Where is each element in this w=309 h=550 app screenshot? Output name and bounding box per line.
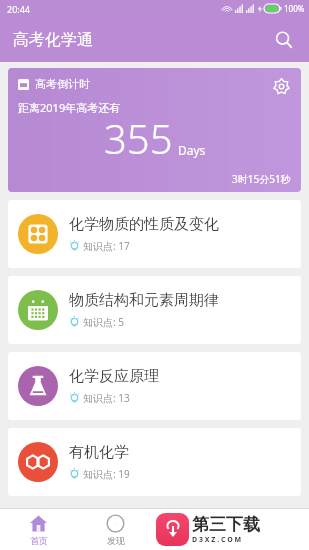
staticText: Days bbox=[178, 142, 206, 158]
staticText: 物质结构和元素周期律 bbox=[69, 291, 219, 310]
staticText: 化学物质的性质及变化 bbox=[69, 215, 219, 234]
button[interactable]: 首页 bbox=[0, 509, 77, 550]
staticText: 高考倒计时 bbox=[35, 77, 90, 91]
button[interactable]: 高考倒计时 bbox=[8, 68, 301, 192]
staticText: 知识点: 13 bbox=[83, 391, 130, 405]
staticText: 知识点: 19 bbox=[83, 467, 130, 481]
staticText: 第三下载 bbox=[192, 514, 260, 535]
button[interactable]: 发现 bbox=[77, 509, 154, 550]
staticText: 100% bbox=[284, 3, 305, 14]
staticText: 3时15分51秒 bbox=[232, 172, 291, 186]
button[interactable]: 化学物质的性质及变化 bbox=[8, 200, 301, 268]
staticText: 距离2019年高考还有 bbox=[18, 100, 121, 115]
staticText: 化学反应原理 bbox=[69, 367, 159, 386]
button[interactable]: 有机化学 bbox=[8, 428, 301, 496]
staticText: 355 bbox=[104, 111, 173, 165]
staticText: 高考化学通 bbox=[13, 30, 93, 50]
staticText: 知识点: 17 bbox=[83, 239, 130, 253]
staticText: 20:44 bbox=[7, 3, 31, 15]
button[interactable]: 化学反应原理 bbox=[8, 352, 301, 420]
button[interactable]: 设置 bbox=[267, 72, 295, 100]
button[interactable]: 物质结构和元素周期律 bbox=[8, 276, 301, 344]
staticText: 有机化学 bbox=[69, 443, 129, 462]
staticText: D 3 X Z . C O M bbox=[192, 535, 242, 545]
staticText: 首页 bbox=[30, 535, 48, 546]
staticText: 知识点: 5 bbox=[83, 315, 124, 329]
button[interactable]: 搜索 bbox=[265, 21, 303, 59]
staticText: 发现 bbox=[107, 535, 125, 546]
